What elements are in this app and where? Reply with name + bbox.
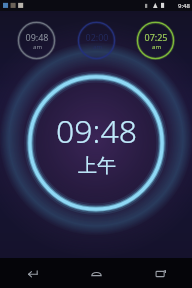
button[interactable]: Alarm disabled [76, 20, 117, 61]
staticText: am [33, 43, 42, 51]
button[interactable]: Recent apps [128, 258, 192, 288]
staticText: 上午 [78, 154, 116, 178]
staticText: 9:48 [178, 2, 190, 10]
button[interactable]: Back [0, 258, 64, 288]
staticText: 09:48 [25, 31, 49, 43]
staticText: am [152, 43, 161, 51]
button[interactable]: Alarm 07:25 am [135, 20, 176, 61]
button[interactable]: Alarm 09:48 am [16, 20, 57, 61]
button[interactable]: Home [64, 258, 128, 288]
staticText: 07:25 [144, 31, 168, 43]
staticText: 09:48 [56, 109, 137, 153]
staticText: 02:00 [85, 31, 109, 43]
staticText: am [93, 43, 102, 51]
button[interactable]: 09:48 [20, 67, 172, 219]
